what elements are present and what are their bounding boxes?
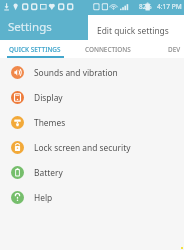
button[interactable]: Themes (0, 110, 184, 135)
button[interactable]: Display (0, 85, 184, 110)
button[interactable]: DEV (168, 45, 181, 54)
button[interactable]: CONNECTIONS (85, 45, 131, 54)
staticText: Sounds and vibration (34, 67, 118, 78)
other: Battery (11, 166, 24, 179)
staticText: 4:17 PM (157, 2, 182, 11)
button[interactable]: Edit quick settings (88, 15, 184, 45)
staticText: 82% (139, 2, 152, 11)
button[interactable]: Sounds and vibration (0, 60, 184, 85)
staticText: Help (34, 192, 53, 203)
staticText: Themes (34, 117, 66, 128)
button[interactable]: Lock screen and security (0, 135, 184, 160)
other: Help (11, 191, 24, 204)
other: Lock screen and security (11, 141, 24, 154)
button[interactable]: Battery (0, 160, 184, 185)
other: Themes (11, 116, 24, 129)
staticText: Display (34, 92, 63, 103)
staticText: Settings (8, 19, 52, 35)
button[interactable]: Help (0, 185, 184, 210)
other: Display (11, 91, 24, 104)
staticText: Edit quick settings (97, 25, 169, 36)
other: Sounds and vibration (11, 66, 24, 79)
button[interactable]: QUICK SETTINGS (9, 45, 61, 54)
staticText: Battery (34, 167, 63, 178)
staticText: Lock screen and security (34, 142, 131, 153)
